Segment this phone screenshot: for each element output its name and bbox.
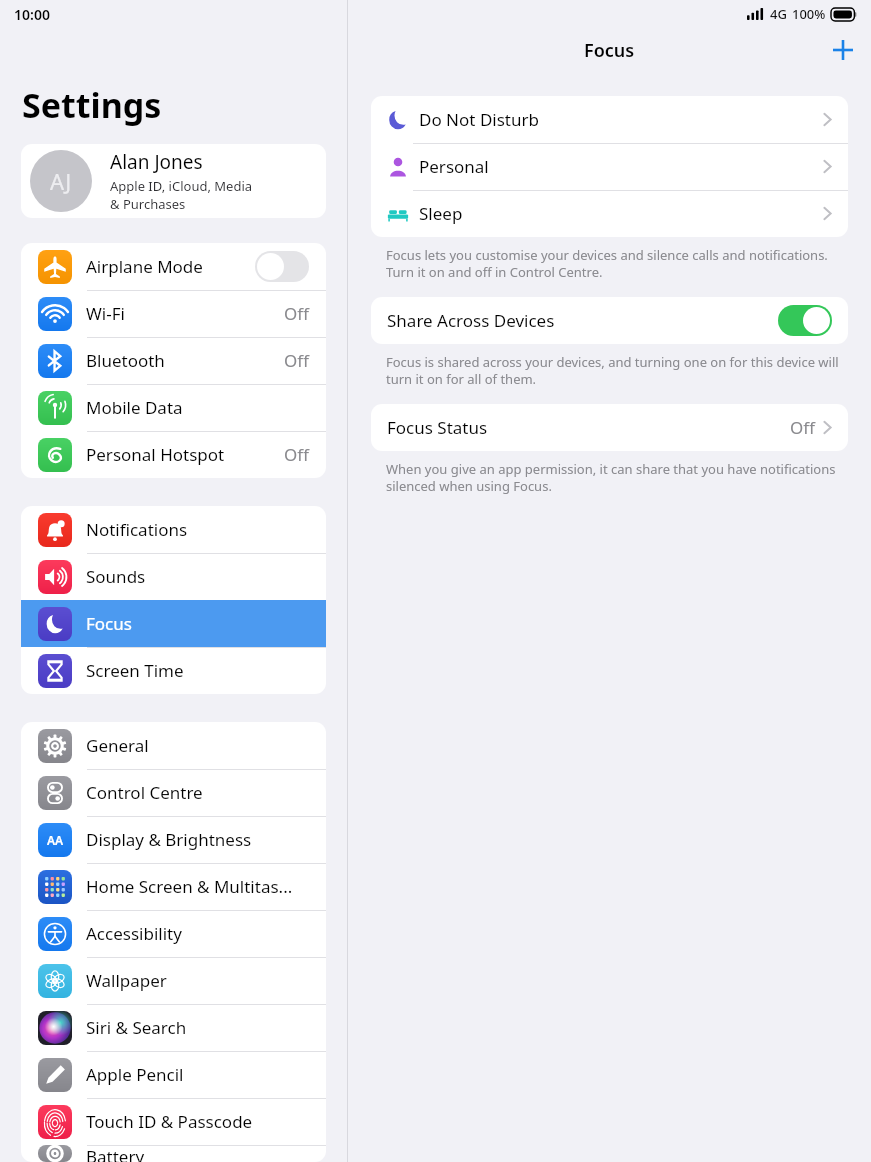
staticText: Personal Hotspot [86,443,284,466]
button[interactable]: Toggle off [255,251,309,282]
staticText: Focus [584,38,635,63]
staticText: AA [47,832,64,848]
staticText: Wi-Fi [86,302,284,325]
button[interactable]: Sounds [21,553,326,600]
staticText: General [86,734,309,757]
staticText: Focus [86,612,309,635]
button[interactable]: Toggle on [778,305,832,336]
button[interactable]: Siri & Search [21,1004,326,1051]
staticText: Accessibility [86,922,309,945]
button[interactable]: Notifications [21,506,326,553]
button[interactable]: Apple Pencil [21,1051,326,1098]
button[interactable]: Add Focus [825,32,861,68]
staticText: Off [284,302,309,325]
staticText: Share Across Devices [387,309,778,332]
staticText: 10:00 [14,5,50,24]
staticText: Alan Jones [110,149,203,175]
staticText: Airplane Mode [86,255,255,278]
button[interactable]: AJ [21,144,326,218]
staticText: Notifications [86,518,309,541]
button[interactable]: Sleep [371,190,848,237]
button[interactable]: Personal [371,143,848,190]
staticText: Siri & Search [86,1016,309,1039]
staticText: Control Centre [86,781,309,804]
staticText: Apple Pencil [86,1063,309,1086]
staticText: Home Screen & Multitas... [86,875,309,898]
staticText: Focus is shared across your devices, and… [386,353,841,388]
button[interactable]: General [21,722,326,769]
staticText: Focus Status [387,416,790,439]
staticText: When you give an app permission, it can … [386,460,841,495]
staticText: Focus lets you customise your devices an… [386,246,841,281]
staticText: Sounds [86,565,309,588]
button[interactable]: Wi-Fi [21,290,326,337]
button[interactable]: Bluetooth [21,337,326,384]
button[interactable]: Battery [21,1145,326,1162]
staticText: Apple ID, iCloud, Media [110,177,253,195]
button[interactable]: AA [21,816,326,863]
staticText: Touch ID & Passcode [86,1110,309,1133]
button[interactable]: Screen Time [21,647,326,694]
staticText: Screen Time [86,659,309,682]
staticText: Wallpaper [86,969,309,992]
staticText: Do Not Disturb [419,108,823,131]
staticText: AJ [50,166,72,196]
staticText: Mobile Data [86,396,309,419]
staticText: Off [284,443,309,466]
button[interactable]: Do Not Disturb [371,96,848,143]
staticText: Display & Brightness [86,828,309,851]
staticText: Off [284,349,309,372]
staticText: Bluetooth [86,349,284,372]
button[interactable]: Accessibility [21,910,326,957]
staticText: Battery [86,1145,309,1162]
button[interactable]: Personal Hotspot [21,431,326,478]
button[interactable]: Focus [21,600,326,647]
staticText: & Purchases [110,195,186,213]
button[interactable]: Touch ID & Passcode [21,1098,326,1145]
button[interactable]: Home Screen & Multitas... [21,863,326,910]
staticText: 4G [770,5,787,23]
staticText: Settings [22,82,162,128]
staticText: 100% [792,5,826,23]
button[interactable]: Control Centre [21,769,326,816]
button[interactable]: Airplane Mode [21,243,326,290]
staticText: Off [790,416,815,439]
staticText: Sleep [419,202,823,225]
button[interactable]: Share Across Devices [371,297,848,344]
button[interactable]: Focus Status [371,404,848,451]
staticText: Personal [419,155,823,178]
button[interactable]: Mobile Data [21,384,326,431]
button[interactable]: Wallpaper [21,957,326,1004]
